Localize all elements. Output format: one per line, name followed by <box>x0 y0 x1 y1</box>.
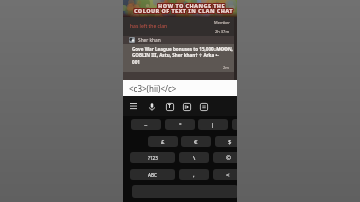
staticText: COLOUR OF TEXT IN CLAN CHAT <box>134 6 233 13</box>
staticText: COLOUR OF TEXT IN CLAN CHAT <box>133 7 232 14</box>
button[interactable]: $ <box>215 136 237 147</box>
staticText: HOW TO CHANGE THE <box>157 2 224 9</box>
staticText: COLOUR OF TEXT IN CLAN CHAT <box>133 8 232 15</box>
staticText: COLOUR OF TEXT IN CLAN CHAT <box>133 8 232 15</box>
button[interactable]: Clipboard <box>198 101 209 112</box>
button[interactable]: Menu <box>128 101 139 112</box>
staticText: HOW TO CHANGE THE <box>158 2 225 9</box>
staticText: COLOUR OF TEXT IN CLAN CHAT <box>135 7 234 14</box>
button[interactable]: © <box>213 152 237 163</box>
staticText: \ <box>193 154 196 162</box>
staticText: HOW TO CHANGE THE <box>157 2 224 9</box>
staticText: HOW TO CHANGE THE <box>157 3 224 10</box>
staticText: HOW TO CHANGE THE <box>157 2 224 9</box>
staticText: COLOUR OF TEXT IN CLAN CHAT <box>134 7 233 14</box>
staticText: HOW TO CHANGE THE <box>158 3 225 10</box>
staticText: HOW TO CHANGE THE <box>159 2 226 9</box>
staticText: HOW TO CHANGE THE <box>158 1 225 8</box>
staticText: HOW TO CHANGE THE <box>157 2 224 9</box>
button[interactable]: Stickers <box>181 101 192 112</box>
staticText: HOW TO CHANGE THE <box>159 2 226 9</box>
staticText: HOW TO CHANGE THE <box>157 2 224 9</box>
staticText: HOW TO CHANGE THE <box>157 2 224 9</box>
staticText: COLOUR OF TEXT IN CLAN CHAT <box>134 8 233 15</box>
staticText: HOW TO CHANGE THE <box>159 2 226 9</box>
staticText: HOW TO CHANGE THE <box>157 1 224 8</box>
staticText: COLOUR OF TEXT IN CLAN CHAT <box>134 8 233 15</box>
staticText: COLOUR OF TEXT IN CLAN CHAT <box>134 7 233 14</box>
staticText: COLOUR OF TEXT IN CLAN CHAT <box>135 6 234 13</box>
staticText: COLOUR OF TEXT IN CLAN CHAT <box>135 7 234 14</box>
button[interactable]: ° <box>165 119 195 130</box>
staticText: <c3>(hii)</c> <box>129 83 177 94</box>
staticText: COLOUR OF TEXT IN CLAN CHAT <box>133 8 232 15</box>
staticText: COLOUR OF TEXT IN CLAN CHAT <box>135 8 234 15</box>
staticText: HOW TO CHANGE THE <box>157 3 224 10</box>
staticText: COLOUR OF TEXT IN CLAN CHAT <box>134 7 233 14</box>
staticText: COLOUR OF TEXT IN CLAN CHAT <box>134 7 233 14</box>
button[interactable]: Text style <box>164 101 175 112</box>
staticText: HOW TO CHANGE THE <box>159 2 226 9</box>
button[interactable]: £ <box>148 136 178 147</box>
staticText: COLOUR OF TEXT IN CLAN CHAT <box>135 7 234 14</box>
button[interactable]: ÷ <box>232 119 237 130</box>
staticText: 2h 37m <box>215 29 230 34</box>
button[interactable]: \ <box>179 152 209 163</box>
staticText: HOW TO CHANGE THE <box>158 2 225 9</box>
staticText: COLOUR OF TEXT IN CLAN CHAT <box>134 7 233 14</box>
staticText: COLOUR OF TEXT IN CLAN CHAT <box>133 8 232 15</box>
staticText: , <box>193 171 195 179</box>
button[interactable]: ~ <box>131 119 161 130</box>
button[interactable]: ?123 <box>130 152 175 163</box>
staticText: COLOUR OF TEXT IN CLAN CHAT <box>135 8 234 15</box>
staticText: COLOUR OF TEXT IN CLAN CHAT <box>134 7 233 14</box>
staticText: COLOUR OF TEXT IN CLAN CHAT <box>135 7 234 14</box>
staticText: COLOUR OF TEXT IN CLAN CHAT <box>135 6 234 13</box>
staticText: © <box>226 154 231 162</box>
button[interactable]: < <box>213 169 237 180</box>
staticText: HOW TO CHANGE THE <box>159 2 226 9</box>
staticText: COLOUR OF TEXT IN CLAN CHAT <box>134 6 233 13</box>
button[interactable]: ABC <box>130 169 175 180</box>
staticText: COLOUR OF TEXT IN CLAN CHAT <box>134 8 233 15</box>
button[interactable]: | <box>198 119 228 130</box>
staticText: HOW TO CHANGE THE <box>158 2 225 9</box>
staticText: HOW TO CHANGE THE <box>159 2 226 9</box>
staticText: has left the clan <box>130 23 168 30</box>
staticText: HOW TO CHANGE THE <box>158 2 225 9</box>
button[interactable]: Voice input <box>146 101 157 112</box>
staticText: COLOUR OF TEXT IN CLAN CHAT <box>133 6 232 13</box>
staticText: HOW TO CHANGE THE <box>158 1 225 8</box>
button[interactable]: , <box>179 169 209 180</box>
staticText: HOW TO CHANGE THE <box>158 3 225 10</box>
staticText: HOW TO CHANGE THE <box>158 2 225 9</box>
staticText: Member <box>214 20 230 25</box>
staticText: HOW TO CHANGE THE <box>159 3 226 10</box>
staticText: HOW TO CHANGE THE <box>157 3 224 10</box>
staticText: COLOUR OF TEXT IN CLAN CHAT <box>133 7 232 14</box>
staticText: HOW TO CHANGE THE <box>157 1 224 8</box>
button[interactable]: € <box>181 136 211 147</box>
staticText: HOW TO CHANGE THE <box>157 1 224 8</box>
staticText: ABC <box>148 172 157 178</box>
staticText: HOW TO CHANGE THE <box>157 2 224 9</box>
staticText: HOW TO CHANGE THE <box>158 2 225 9</box>
staticText: HOW TO CHANGE THE <box>158 1 225 8</box>
staticText: ° <box>179 121 182 129</box>
staticText: COLOUR OF TEXT IN CLAN CHAT <box>133 7 232 14</box>
staticText: HOW TO CHANGE THE <box>159 1 226 8</box>
staticText: COLOUR OF TEXT IN CLAN CHAT <box>135 8 234 15</box>
staticText: HOW TO CHANGE THE <box>159 2 226 9</box>
staticText: COLOUR OF TEXT IN CLAN CHAT <box>135 7 234 14</box>
staticText: COLOUR OF TEXT IN CLAN CHAT <box>134 6 233 13</box>
staticText: Gove War League bonuses to 15,000..MOON,… <box>132 46 233 66</box>
staticText: HOW TO CHANGE THE <box>158 3 225 10</box>
staticText: COLOUR OF TEXT IN CLAN CHAT <box>134 8 233 15</box>
staticText: COLOUR OF TEXT IN CLAN CHAT <box>135 8 234 15</box>
staticText: HOW TO CHANGE THE <box>159 3 226 10</box>
staticText: COLOUR OF TEXT IN CLAN CHAT <box>133 8 232 15</box>
staticText: HOW TO CHANGE THE <box>158 2 225 9</box>
button[interactable]: <c3>(hii)</c> <box>123 80 237 96</box>
staticText: T <box>168 103 171 110</box>
